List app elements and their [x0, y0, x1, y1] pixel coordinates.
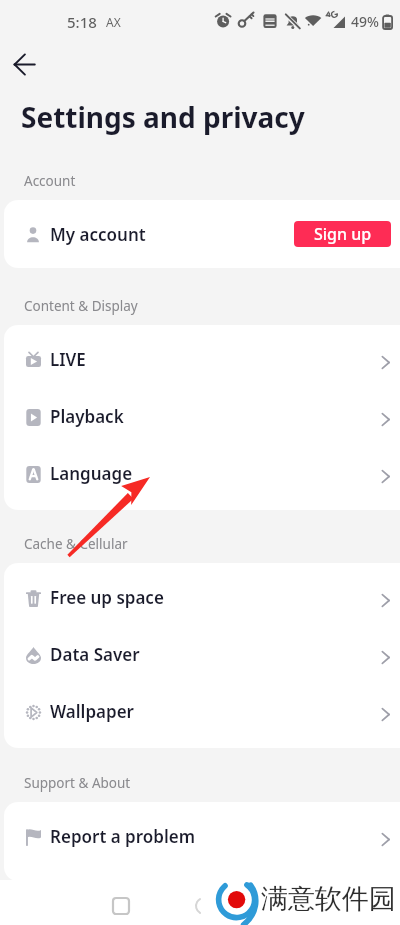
staticText: 满意软件园: [261, 882, 396, 916]
button[interactable]: Data Saver: [4, 629, 400, 686]
button[interactable]: Sign up: [294, 221, 391, 247]
staticText: 49%: [351, 12, 379, 31]
staticText: Sign up: [314, 223, 372, 245]
staticText: Support & About: [24, 774, 131, 792]
staticText: 5:18: [67, 12, 97, 32]
button[interactable]: Wallpaper: [4, 686, 400, 743]
staticText: Report a problem: [50, 825, 195, 848]
button[interactable]: Report a problem: [4, 811, 400, 868]
button[interactable]: Language: [4, 448, 400, 505]
staticText: LIVE: [50, 348, 86, 371]
staticText: Language: [50, 462, 133, 485]
button[interactable]: Playback: [4, 391, 400, 448]
staticText: Cache & Cellular: [24, 535, 128, 553]
staticText: Content & Display: [24, 297, 138, 315]
staticText: Free up space: [50, 586, 164, 609]
staticText: Account: [24, 172, 76, 190]
button[interactable]: LIVE: [4, 334, 400, 391]
staticText: Playback: [50, 405, 124, 428]
button[interactable]: Back: [8, 48, 41, 81]
staticText: Settings and privacy: [21, 98, 305, 136]
staticText: My account: [50, 223, 146, 246]
button[interactable]: Free up space: [4, 572, 400, 629]
button[interactable]: My account: [4, 200, 400, 268]
staticText: AX: [106, 14, 121, 30]
button[interactable]: Recent apps: [111, 896, 131, 916]
staticText: Data Saver: [50, 643, 140, 666]
staticText: Wallpaper: [50, 700, 134, 723]
